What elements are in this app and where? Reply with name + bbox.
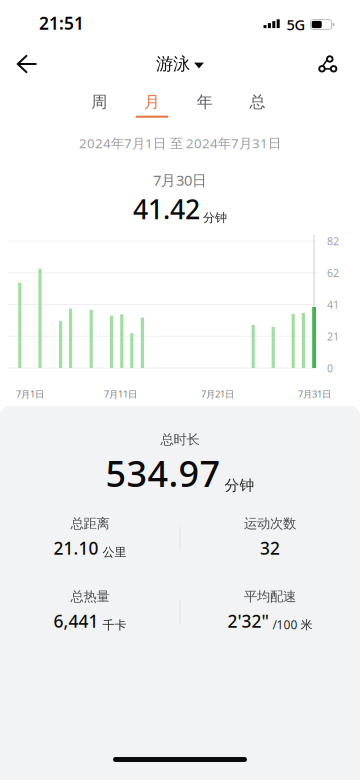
staticText: 534.97 <box>105 449 220 497</box>
staticText: 2'32" <box>227 609 268 632</box>
staticText: 7月21日 <box>201 388 234 400</box>
staticText: 年 <box>197 92 213 112</box>
staticText: 32 <box>260 536 280 559</box>
staticText: 0 <box>327 361 333 375</box>
staticText: 6,441 <box>53 609 98 632</box>
staticText: 月 <box>144 92 160 112</box>
staticText: 总距离 <box>70 515 109 532</box>
staticText: 7月11日 <box>104 388 137 400</box>
staticText: 7月31日 <box>298 388 331 400</box>
staticText: 7月1日 <box>16 388 44 400</box>
staticText: 千卡 <box>102 618 126 632</box>
button[interactable]: 周 <box>73 90 126 122</box>
staticText: 总时长 <box>160 431 199 448</box>
staticText: 41 <box>327 297 339 312</box>
staticText: 分钟 <box>224 476 254 494</box>
button[interactable]: 月 <box>126 90 178 122</box>
button[interactable]: 总 <box>231 90 284 122</box>
button[interactable]: 分享 <box>303 42 351 86</box>
button[interactable]: 游泳 <box>0 52 360 76</box>
staticText: 7月30日 <box>153 170 207 190</box>
staticText: /100 米 <box>272 617 312 632</box>
staticText: 82 <box>327 234 339 248</box>
staticText: 5G <box>286 15 305 34</box>
button[interactable]: 年 <box>178 90 231 122</box>
staticText: 总热量 <box>70 588 109 605</box>
staticText: 分钟 <box>203 210 227 225</box>
staticText: 62 <box>327 266 339 280</box>
staticText: 41.42 <box>133 191 200 227</box>
staticText: 21 <box>327 329 339 343</box>
staticText: 平均配速 <box>244 588 296 605</box>
staticText: 游泳 <box>156 53 190 75</box>
button[interactable]: 返回 <box>3 42 51 86</box>
staticText: 运动次数 <box>244 515 296 532</box>
staticText: 2024年7月1日 至 2024年7月31日 <box>79 134 281 152</box>
staticText: 21:51 <box>39 11 84 34</box>
staticText: 周 <box>91 92 107 112</box>
staticText: 公里 <box>102 545 126 559</box>
staticText: 总 <box>249 92 265 112</box>
staticText: 21.10 <box>53 536 98 559</box>
